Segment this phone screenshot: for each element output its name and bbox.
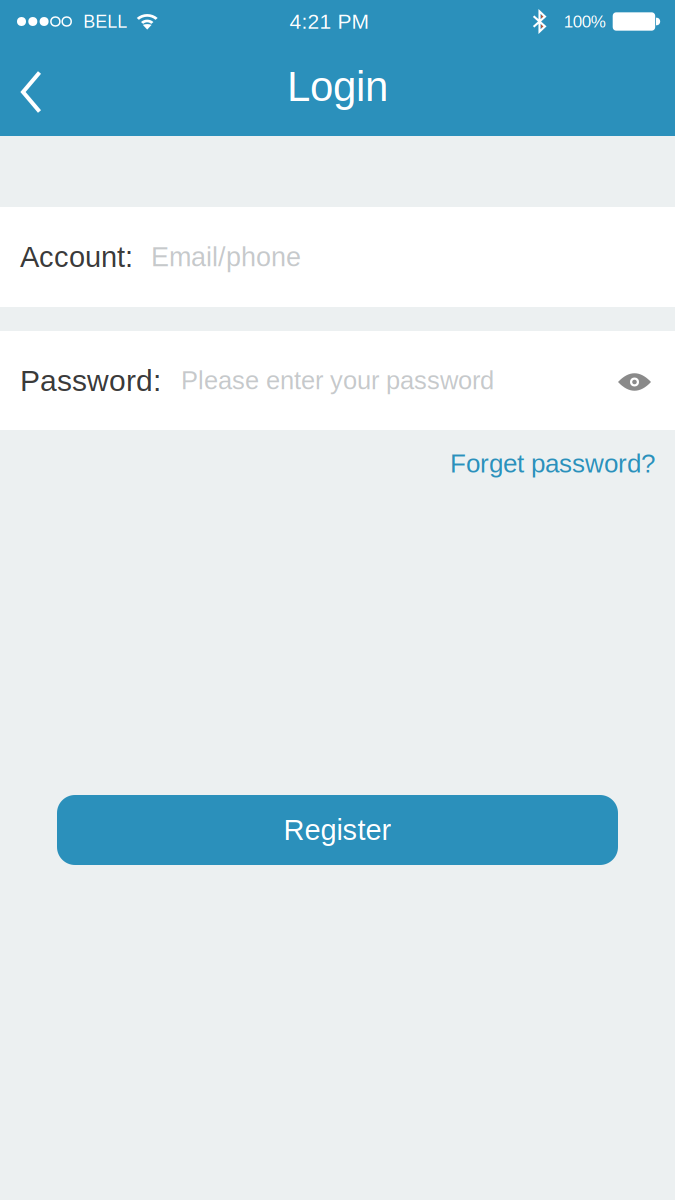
- button[interactable]: Show password: [618, 372, 651, 389]
- staticText: Forget password?: [450, 449, 655, 478]
- staticText: Email/phone: [151, 242, 301, 272]
- staticText: 4:21 PM: [289, 10, 368, 33]
- staticText: Please enter your password: [181, 366, 494, 395]
- button[interactable]: Back: [0, 44, 42, 139]
- staticText: BELL: [83, 11, 127, 31]
- staticText: 100%: [564, 12, 606, 31]
- staticText: Register: [283, 814, 391, 846]
- staticText: Login: [287, 63, 388, 110]
- staticText: Account:: [20, 241, 133, 273]
- button[interactable]: Forget password?: [450, 449, 655, 478]
- button[interactable]: Register: [57, 795, 618, 865]
- staticText: Password:: [20, 364, 161, 397]
